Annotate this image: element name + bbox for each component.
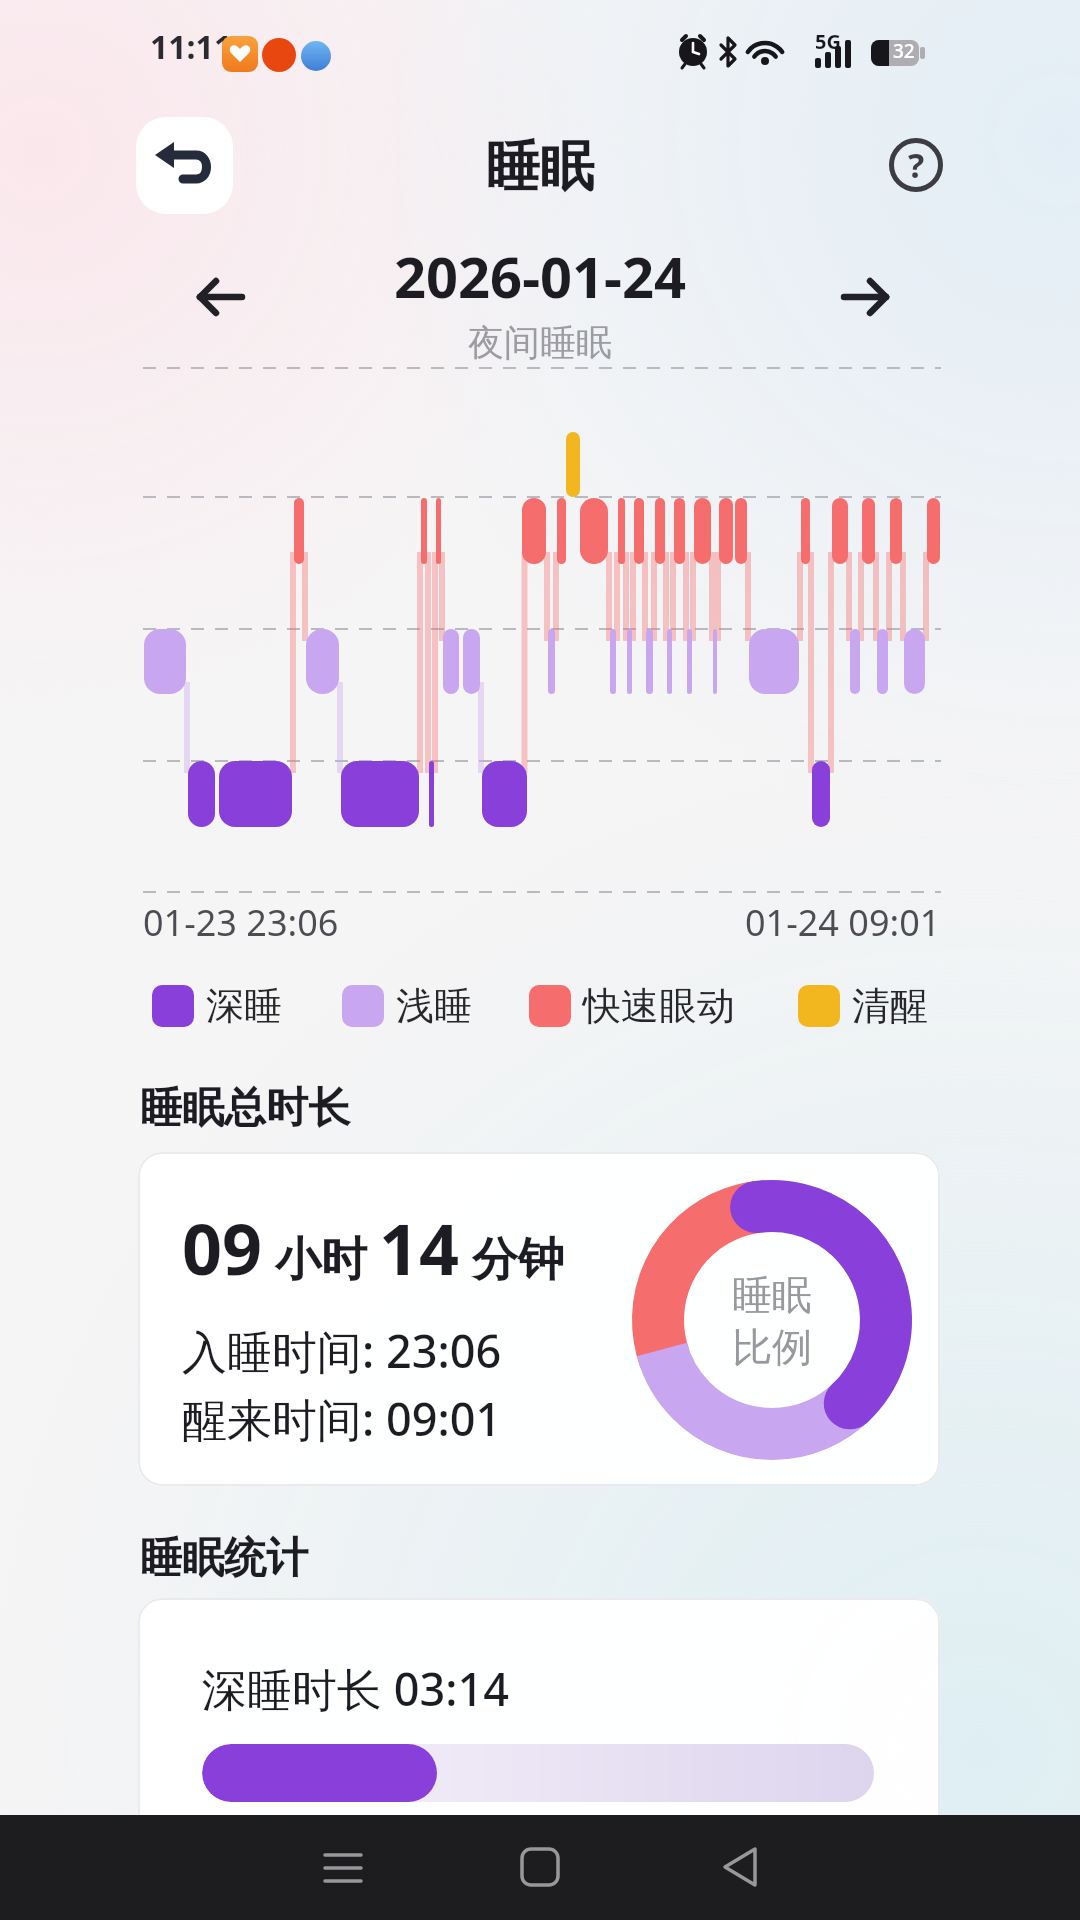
staticText: 比例 [732,1322,812,1370]
staticText: 5G [815,28,841,55]
button[interactable]: 深睡 [152,982,282,1030]
staticText: 深睡 [206,982,282,1030]
button[interactable] [190,265,254,329]
staticText: 01-23 23:06 [143,898,339,947]
staticText: 睡眠 [732,1270,812,1320]
staticText: 小时 [263,1226,379,1289]
button[interactable]: 浅睡 [342,982,472,1030]
staticText: 入睡时间: 23:06 [182,1320,502,1381]
staticText: 32 [893,38,915,64]
button[interactable] [500,1827,580,1907]
staticText: 14 [379,1200,460,1295]
button[interactable] [832,265,896,329]
button[interactable]: 09 [138,1152,940,1486]
staticText: 2026-01-24 [394,238,687,314]
staticText: 夜间睡眠 [468,320,612,365]
button[interactable]: 深睡时长 03:14 [138,1598,940,1920]
button[interactable] [136,117,233,214]
button[interactable]: ? [884,133,948,197]
staticText: 深睡时长 03:14 [202,1658,509,1719]
button[interactable]: 快速眼动 [529,982,735,1030]
staticText: 快速眼动 [583,982,735,1030]
staticText: 01-24 09:01 [745,898,941,947]
button[interactable]: 清醒 [798,982,928,1030]
staticText: 11:11 [150,25,233,69]
button[interactable] [700,1827,780,1907]
staticText: 睡眠统计 [140,1532,308,1585]
staticText: 清醒 [852,982,928,1030]
staticText: 分钟 [460,1226,564,1289]
staticText: ? [908,142,925,188]
staticText: 09 [182,1200,263,1295]
button[interactable] [303,1827,383,1907]
staticText: 睡眠 [486,133,594,201]
staticText: 浅睡 [396,982,472,1030]
staticText: 醒来时间: 09:01 [182,1388,502,1449]
staticText: 睡眠总时长 [140,1082,350,1135]
